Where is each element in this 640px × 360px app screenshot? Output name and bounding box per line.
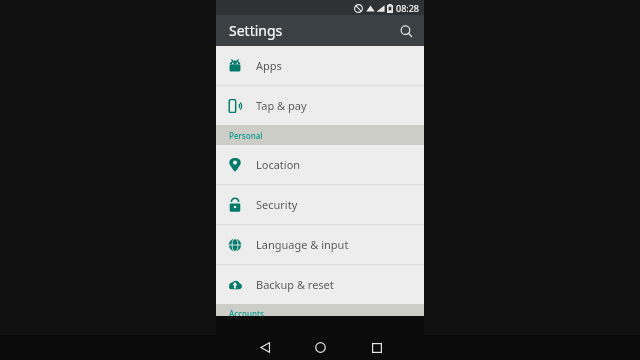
staticText: Apps [256,58,282,73]
button[interactable]: Back [252,335,278,360]
staticText: Tap & pay [256,98,307,113]
staticText: Personal [229,130,263,141]
staticText: Security [256,197,298,212]
staticText: Language & input [256,237,349,252]
button[interactable]: Search [395,20,417,42]
button[interactable]: Backup & reset [216,265,424,304]
button[interactable]: Home [307,335,333,360]
staticText: Location [256,157,301,172]
staticText: Backup & reset [256,277,334,292]
button[interactable]: Security [216,185,424,224]
staticText: Settings [229,21,283,40]
button[interactable]: Language & input [216,225,424,264]
button[interactable]: Recent apps [364,335,390,360]
button[interactable]: Apps [216,46,424,85]
button[interactable]: Tap & pay [216,86,424,125]
staticText: Accounts [229,308,264,316]
staticText: 08:28 [396,2,420,14]
button[interactable]: Location [216,145,424,184]
